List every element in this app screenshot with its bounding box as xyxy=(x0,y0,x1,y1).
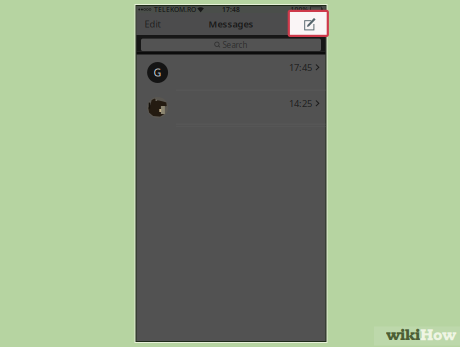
staticText: wiki xyxy=(386,325,420,346)
staticText: How xyxy=(420,325,456,346)
staticText: TELEKOM.RO xyxy=(154,5,196,14)
staticText: 17:45 xyxy=(289,61,312,73)
staticText: 14:25 xyxy=(289,97,312,109)
button[interactable]: Search xyxy=(141,39,321,51)
staticText: Edit xyxy=(144,18,160,30)
staticText: Search xyxy=(222,39,247,50)
staticText: G xyxy=(154,65,162,79)
button[interactable]: Compose new message xyxy=(289,11,328,36)
button[interactable]: 14:25 xyxy=(136,90,325,124)
button[interactable]: Compose new message xyxy=(299,13,322,35)
staticText: Messages xyxy=(208,18,253,30)
staticText: 17:48 xyxy=(222,5,240,14)
staticText: 100% xyxy=(290,5,308,14)
button[interactable]: Edit xyxy=(139,13,165,35)
button[interactable]: G xyxy=(136,54,325,90)
